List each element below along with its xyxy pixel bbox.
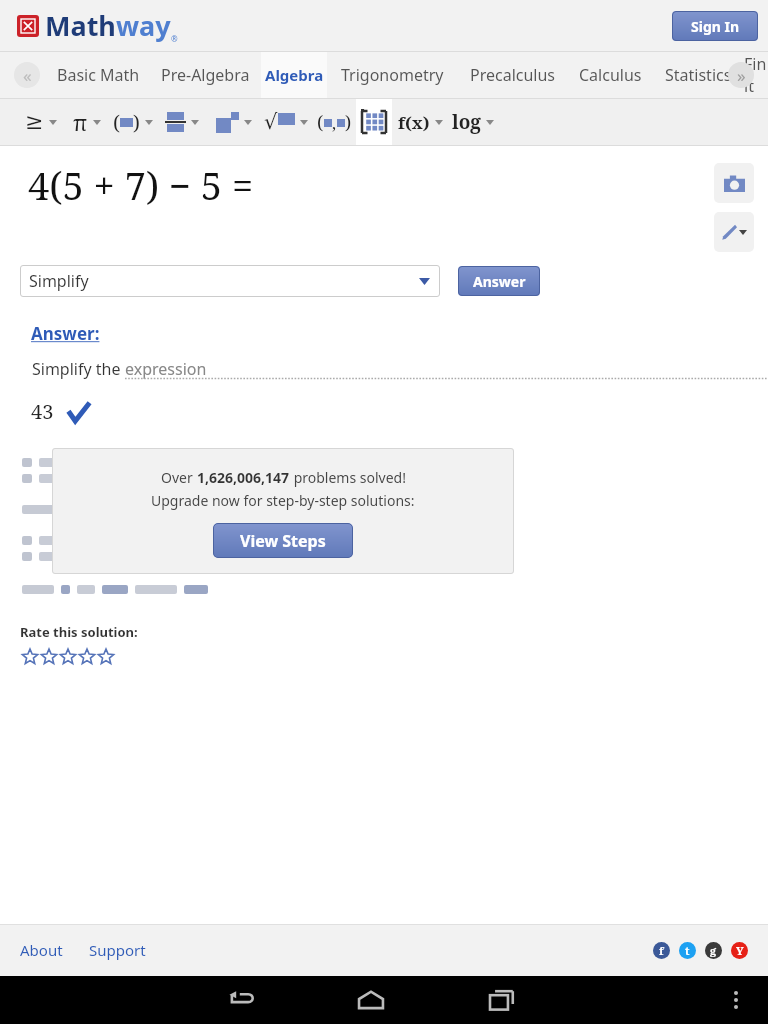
button[interactable]: Scroll tabs left [14,62,40,88]
staticText: Answer [473,272,526,291]
button[interactable]: Rate 3 stars [58,647,77,666]
staticText: problems solved! [290,468,406,487]
button[interactable]: Recent apps [475,976,527,1024]
button[interactable]: Rate 1 stars [20,647,39,666]
button[interactable]: expression [125,358,207,380]
staticText: ( [317,110,324,135]
staticText: way [116,7,171,44]
staticText: Upgrade now for step-by-step solutions: [151,491,415,510]
button[interactable]: Parentheses [110,99,156,145]
staticText: Precalculus [470,64,556,86]
button[interactable]: Twitter [679,942,696,959]
button[interactable]: Functions [392,99,448,145]
staticText: Basic Math [57,64,140,86]
staticText: Rate this solution: [20,623,138,641]
button[interactable]: Simplify [20,265,440,297]
staticText: t [685,943,690,958]
button[interactable]: Finit [744,52,768,98]
button[interactable]: Rate 2 stars [39,647,58,666]
button[interactable]: Calculus [568,52,653,98]
staticText: g [710,943,717,958]
staticText: Calculus [579,64,642,86]
button[interactable]: Fraction [156,99,208,145]
button[interactable]: Rate 5 stars [96,647,115,666]
staticText: Statistics [665,64,732,86]
button[interactable]: Coordinate pair [312,99,356,145]
button[interactable]: Constants [64,99,110,145]
staticText: Trigonometry [341,64,444,86]
staticText: , [332,112,337,134]
button[interactable]: Trigonometry [327,52,458,98]
button[interactable]: Sign In [672,11,758,41]
button[interactable]: Exponent [208,99,260,145]
button[interactable]: Pre-Algebra [150,52,261,98]
button[interactable]: View Steps [213,523,353,558]
staticText: About [20,940,63,960]
button[interactable]: Scroll tabs right [728,62,754,88]
button[interactable]: Basic Math [46,52,150,98]
staticText: ® [171,33,178,44]
staticText: ) [345,110,352,135]
button[interactable]: Precalculus [458,52,568,98]
button[interactable]: Algebra [261,52,327,98]
button[interactable]: Take photo of problem [714,163,754,203]
staticText: ( [113,109,120,136]
button[interactable]: Answer: [31,322,100,345]
staticText: Over [161,468,197,487]
button[interactable]: Drawing input [714,212,754,252]
staticText: Math [45,7,116,44]
staticText: View Steps [240,530,326,552]
staticText: f(x) [398,111,430,134]
staticText: ) [133,109,140,136]
staticText: Answer: [31,322,100,345]
button[interactable]: Support [89,940,146,960]
staticText: 43 [31,398,54,425]
staticText: Finit [744,53,768,97]
staticText: Y [736,943,744,958]
staticText: √ [264,110,278,134]
button[interactable]: Answer [458,266,540,296]
button[interactable]: Logarithm [448,99,498,145]
staticText: π [73,107,88,137]
button[interactable]: About [20,940,63,960]
button[interactable]: Facebook [653,942,670,959]
button[interactable]: Rate 4 stars [77,647,96,666]
staticText: Pre-Algebra [161,64,250,86]
button[interactable]: Statistics [653,52,744,98]
button[interactable]: Home [345,976,397,1024]
staticText: 1,626,006,147 [197,468,290,487]
button[interactable]: YouTube [731,942,748,959]
staticText: Simplify the [32,358,125,380]
staticText: Simplify [29,270,89,292]
staticText: Support [89,940,146,960]
staticText: Sign In [691,17,740,36]
button[interactable]: Back [215,976,267,1024]
button[interactable]: Google Plus [705,942,722,959]
button[interactable]: Inequality symbols [18,99,64,145]
staticText: ≥ [25,109,44,135]
staticText: Algebra [265,65,324,85]
staticText: 4(5 + 7) − 5 = [28,159,254,211]
button[interactable]: Matrix [356,99,392,145]
staticText: log [452,109,481,135]
button[interactable]: More options [712,976,760,1024]
staticText: » [737,64,746,87]
button[interactable]: Square root [260,99,312,145]
staticText: f [659,943,664,958]
staticText: « [23,64,32,87]
